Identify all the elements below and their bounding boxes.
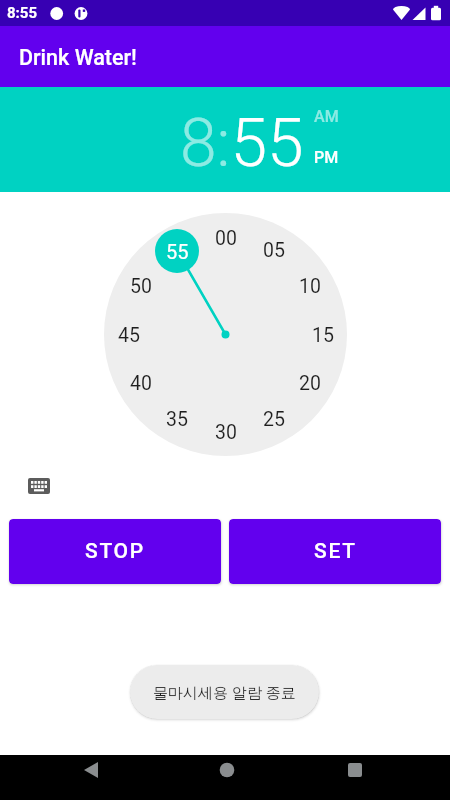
staticText: 05 (263, 239, 285, 262)
button[interactable] (150, 755, 300, 800)
button[interactable]: STOP (9, 519, 221, 584)
staticText: 50 (130, 275, 152, 298)
button[interactable]: 05 (252, 228, 296, 272)
staticText: 35 (166, 408, 188, 431)
staticText: 45 (118, 324, 140, 347)
button[interactable]: 50 (119, 264, 163, 308)
staticText: 물마시세용 알람 종료 (153, 682, 296, 702)
button[interactable]: AM (314, 107, 339, 126)
staticText: 40 (130, 372, 152, 395)
button[interactable]: 20 (288, 361, 332, 405)
button[interactable] (0, 755, 150, 800)
staticText: 00 (215, 227, 237, 250)
staticText: 10 (299, 275, 321, 298)
button[interactable]: 35 (155, 397, 199, 441)
staticText: 30 (215, 421, 237, 444)
button[interactable]: 45 (107, 313, 151, 357)
staticText: 25 (263, 408, 285, 431)
button[interactable]: 30 (204, 410, 248, 454)
staticText: 20 (299, 372, 321, 395)
button[interactable]: 00 (204, 216, 248, 260)
staticText: 8:55 (180, 105, 304, 182)
button[interactable]: 40 (119, 361, 163, 405)
staticText: STOP (85, 539, 145, 564)
button[interactable]: PM (314, 148, 339, 167)
button[interactable]: SET (229, 519, 441, 584)
button[interactable]: 10 (288, 264, 332, 308)
staticText: 15 (312, 324, 334, 347)
button[interactable]: 25 (252, 397, 296, 441)
button[interactable] (28, 478, 50, 494)
button[interactable]: 55 (155, 229, 199, 273)
staticText: 8:55 (7, 4, 38, 22)
staticText: Drink Water! (19, 45, 137, 70)
staticText: SET (314, 539, 357, 564)
staticText: 55 (166, 240, 189, 263)
button[interactable] (300, 755, 450, 800)
button[interactable]: 15 (301, 313, 345, 357)
